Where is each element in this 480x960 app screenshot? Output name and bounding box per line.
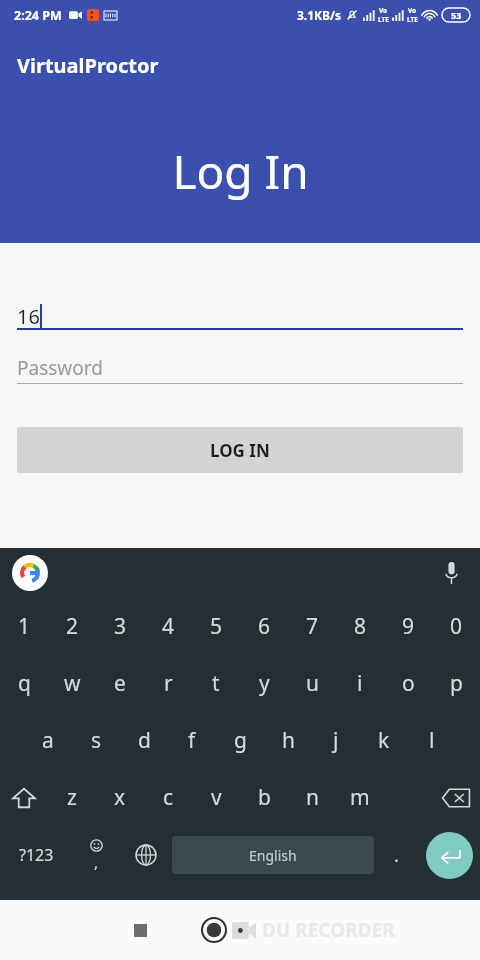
button[interactable]: 6: [240, 598, 288, 655]
button[interactable]: a: [24, 712, 72, 769]
button[interactable]: t: [192, 655, 240, 712]
button[interactable]: x: [96, 769, 144, 826]
staticText: g: [234, 726, 247, 755]
staticText: c: [163, 783, 174, 812]
button[interactable]: 2: [48, 598, 96, 655]
staticText: ?123: [19, 844, 54, 866]
button[interactable]: h: [264, 712, 312, 769]
button[interactable]: 1: [0, 598, 48, 655]
staticText: 5: [210, 612, 223, 641]
button[interactable]: y: [240, 655, 288, 712]
staticText: v: [211, 783, 222, 812]
button[interactable]: Enter: [418, 826, 480, 884]
staticText: f: [188, 726, 196, 755]
staticText: LTE: [407, 15, 418, 24]
button[interactable]: r: [144, 655, 192, 712]
staticText: DU RECORDER: [262, 917, 395, 943]
button[interactable]: i: [336, 655, 384, 712]
button[interactable]: LOG IN: [17, 427, 463, 473]
staticText: t: [212, 669, 220, 698]
staticText: 9: [402, 612, 415, 641]
button[interactable]: Emoji and comma: [72, 826, 120, 884]
button[interactable]: .: [374, 826, 418, 884]
button[interactable]: d: [120, 712, 168, 769]
button[interactable]: m: [336, 769, 384, 826]
staticText: l: [429, 726, 435, 755]
staticText: 53: [451, 9, 462, 21]
button[interactable]: 8: [336, 598, 384, 655]
staticText: n: [306, 783, 319, 812]
staticText: w: [64, 669, 81, 698]
staticText: Log In: [172, 140, 309, 203]
staticText: 2: [66, 612, 79, 641]
staticText: i: [357, 669, 363, 698]
staticText: LOG IN: [210, 439, 270, 462]
button[interactable]: Backspace: [432, 769, 480, 826]
staticText: 2:24 PM: [14, 7, 62, 24]
staticText: d: [138, 726, 151, 755]
button[interactable]: ?123: [0, 826, 72, 884]
staticText: Vo: [408, 6, 417, 15]
button[interactable]: Shift: [0, 769, 48, 826]
button[interactable]: u: [288, 655, 336, 712]
staticText: Password: [17, 355, 103, 381]
staticText: 0: [450, 612, 463, 641]
button[interactable]: v: [192, 769, 240, 826]
button[interactable]: e: [96, 655, 144, 712]
staticText: e: [114, 669, 126, 698]
staticText: English: [249, 846, 297, 865]
button[interactable]: 16: [17, 300, 463, 330]
button[interactable]: c: [144, 769, 192, 826]
button[interactable]: b: [240, 769, 288, 826]
staticText: m: [350, 783, 370, 812]
button[interactable]: Google: [12, 555, 48, 591]
button[interactable]: l: [408, 712, 456, 769]
staticText: ,: [94, 852, 99, 872]
button[interactable]: n: [288, 769, 336, 826]
staticText: u: [306, 669, 319, 698]
button[interactable]: j: [312, 712, 360, 769]
staticText: s: [91, 726, 102, 755]
staticText: k: [378, 726, 390, 755]
staticText: o: [402, 669, 415, 698]
staticText: 3: [114, 612, 127, 641]
staticText: Vo: [379, 6, 388, 15]
button[interactable]: 3: [96, 598, 144, 655]
staticText: p: [450, 669, 463, 698]
button[interactable]: w: [48, 655, 96, 712]
button[interactable]: English: [172, 836, 374, 874]
staticText: y: [259, 669, 270, 698]
staticText: b: [258, 783, 271, 812]
staticText: VirtualProctor: [17, 52, 159, 79]
staticText: 16: [17, 303, 40, 330]
button[interactable]: 0: [432, 598, 480, 655]
button[interactable]: p: [432, 655, 480, 712]
staticText: r: [164, 669, 173, 698]
button[interactable]: z: [48, 769, 96, 826]
button[interactable]: f: [168, 712, 216, 769]
staticText: x: [114, 783, 126, 812]
staticText: j: [333, 726, 339, 755]
button[interactable]: 9: [384, 598, 432, 655]
button[interactable]: 5: [192, 598, 240, 655]
staticText: q: [18, 669, 31, 698]
button[interactable]: Voice input: [434, 556, 468, 590]
staticText: z: [67, 783, 77, 812]
button[interactable]: q: [0, 655, 48, 712]
button[interactable]: k: [360, 712, 408, 769]
button[interactable]: Change language: [120, 826, 172, 884]
button[interactable]: g: [216, 712, 264, 769]
staticText: LTE: [378, 15, 389, 24]
button[interactable]: 7: [288, 598, 336, 655]
staticText: 4: [162, 612, 175, 641]
button[interactable]: Recents: [118, 908, 162, 952]
button[interactable]: s: [72, 712, 120, 769]
staticText: 7: [306, 612, 319, 641]
staticText: a: [42, 726, 54, 755]
staticText: h: [282, 726, 295, 755]
button[interactable]: o: [384, 655, 432, 712]
staticText: 1: [18, 612, 31, 641]
button[interactable]: 4: [144, 598, 192, 655]
staticText: 6: [258, 612, 271, 641]
button[interactable]: Password: [17, 354, 463, 384]
